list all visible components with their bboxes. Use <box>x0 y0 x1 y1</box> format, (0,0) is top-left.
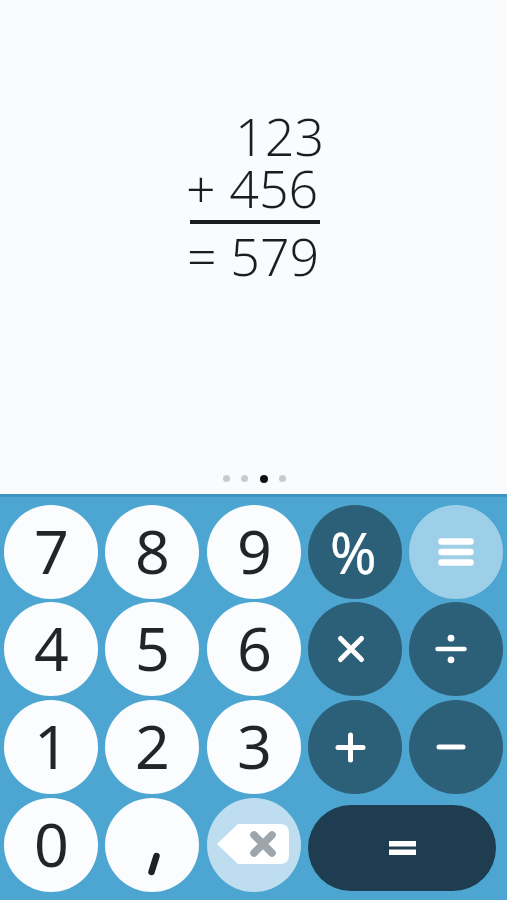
staticText: 3 <box>237 704 272 787</box>
button[interactable]: % <box>308 505 402 599</box>
staticText: 4 <box>34 606 69 689</box>
staticText: + 456 <box>186 152 319 212</box>
button[interactable]: 1 <box>4 700 98 794</box>
staticText: = 579 <box>187 220 320 280</box>
staticText: % <box>330 514 377 590</box>
button[interactable]: 6 <box>207 602 301 696</box>
button[interactable]: 0 <box>4 798 98 892</box>
button[interactable]: 5 <box>105 602 199 696</box>
button[interactable] <box>308 805 496 891</box>
staticText: 7 <box>34 509 69 592</box>
button[interactable] <box>105 798 199 892</box>
button[interactable]: 4 <box>4 602 98 696</box>
staticText: 0 <box>34 802 69 885</box>
staticText: 1 <box>34 704 69 787</box>
button[interactable]: 7 <box>4 505 98 599</box>
staticText: 5 <box>135 606 170 689</box>
button[interactable] <box>308 602 402 696</box>
staticText: 6 <box>237 606 272 689</box>
button[interactable] <box>308 700 402 794</box>
staticText: 8 <box>135 509 170 592</box>
button[interactable] <box>409 505 503 599</box>
button[interactable]: 3 <box>207 700 301 794</box>
staticText: 2 <box>135 704 170 787</box>
button[interactable] <box>409 602 503 696</box>
button[interactable]: 8 <box>105 505 199 599</box>
button[interactable]: 9 <box>207 505 301 599</box>
button[interactable]: 2 <box>105 700 199 794</box>
staticText: 9 <box>237 509 272 592</box>
button[interactable] <box>207 798 301 892</box>
staticText: 123 <box>235 100 325 160</box>
button[interactable] <box>409 700 503 794</box>
